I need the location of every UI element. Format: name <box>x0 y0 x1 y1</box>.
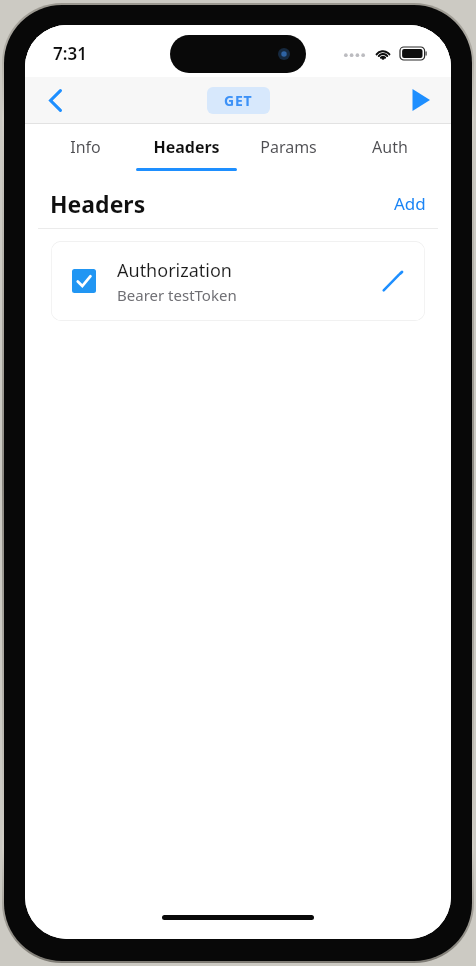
button[interactable]: Send request <box>399 78 443 122</box>
button[interactable]: Params <box>237 124 339 171</box>
staticText: Authorization <box>117 258 232 283</box>
button[interactable]: Auth <box>339 124 441 171</box>
staticText: Bearer testToken <box>117 285 237 305</box>
staticText: GET <box>224 91 253 110</box>
staticText: Headers <box>50 188 146 219</box>
staticText: Headers <box>153 136 220 158</box>
button[interactable]: GET <box>207 87 270 114</box>
staticText: Auth <box>372 136 408 158</box>
button[interactable]: Toggle header enabled <box>69 266 99 296</box>
button[interactable]: Edit header <box>373 262 411 300</box>
button[interactable]: Info <box>35 124 136 171</box>
staticText: Params <box>260 136 317 158</box>
staticText: Add <box>394 192 426 215</box>
staticText: Info <box>70 136 101 158</box>
button[interactable]: Add <box>390 188 430 219</box>
staticText: 7:31 <box>53 42 87 65</box>
button[interactable]: Toggle header enabled <box>51 241 425 321</box>
button[interactable]: Back <box>33 78 77 122</box>
button[interactable]: Headers <box>136 124 237 171</box>
